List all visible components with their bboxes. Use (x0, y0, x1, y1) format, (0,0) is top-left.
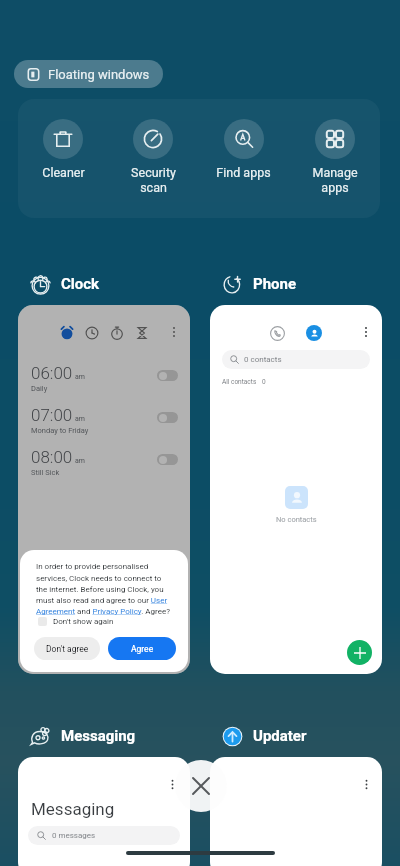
button[interactable] (210, 757, 382, 866)
staticText: Phone (253, 275, 297, 293)
button[interactable]: Cleaner (18, 99, 108, 180)
staticText: 0 contacts (244, 355, 282, 364)
button[interactable]: Close all (175, 760, 227, 812)
button[interactable]: Agree (108, 637, 176, 660)
button[interactable]: Clock (18, 271, 100, 297)
button[interactable]: 0 messages (28, 826, 180, 845)
staticText: Manage apps (312, 165, 358, 195)
staticText: Find apps (216, 165, 271, 180)
staticText: 07:00 (31, 405, 73, 425)
button[interactable]: Messaging (18, 723, 136, 749)
staticText: Messaging (31, 799, 115, 819)
staticText: Don't show again (53, 617, 114, 626)
staticText: Monday to Friday (31, 426, 89, 435)
staticText: Agree (131, 644, 154, 654)
staticText: 0 (262, 378, 266, 386)
staticText: am (75, 457, 85, 465)
button[interactable]: Security scan (108, 99, 198, 195)
button[interactable]: Don't agree (34, 637, 100, 660)
staticText: Cleaner (42, 165, 85, 180)
staticText: am (75, 415, 85, 423)
staticText: No contacts (276, 515, 317, 524)
button[interactable]: Messaging (18, 757, 190, 866)
staticText: 0 messages (52, 831, 96, 840)
staticText: In order to provide personalised service… (36, 562, 170, 616)
staticText: 06:00 (31, 363, 73, 383)
staticText: Daily (31, 384, 48, 393)
staticText: am (75, 373, 85, 381)
button[interactable]: Phone (210, 271, 297, 297)
button[interactable]: 0 contacts (222, 350, 370, 369)
staticText: 08:00 (31, 447, 73, 467)
button[interactable]: Don't show again (34, 614, 118, 629)
staticText: Clock (61, 275, 100, 293)
button[interactable]: Manage apps (289, 99, 380, 195)
button[interactable]: Updater (210, 723, 307, 749)
button[interactable]: Find apps (198, 99, 289, 180)
staticText: All contacts (222, 378, 257, 386)
staticText: Updater (253, 727, 307, 745)
button[interactable]: Add contact (347, 640, 372, 665)
staticText: Security scan (131, 165, 176, 195)
staticText: Still Sick (31, 468, 60, 477)
button[interactable]: Floating windows (14, 60, 163, 88)
staticText: Floating windows (48, 67, 150, 82)
staticText: Messaging (61, 727, 136, 745)
staticText: Don't agree (46, 644, 89, 654)
button[interactable]: 0 contacts (210, 305, 382, 674)
button[interactable]: 06:00 (18, 305, 190, 674)
